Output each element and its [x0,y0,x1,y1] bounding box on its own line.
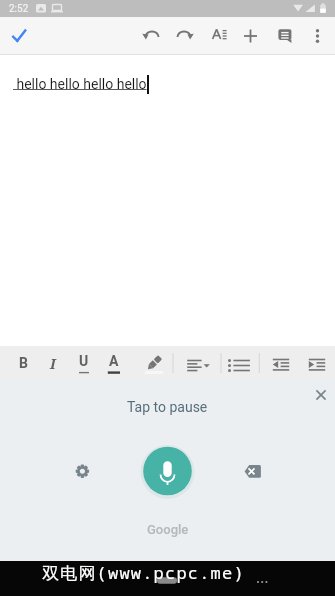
staticText: U [79,353,89,369]
button[interactable] [138,346,170,380]
button[interactable] [266,346,296,380]
staticText: hello hello hello hello [13,76,147,92]
button[interactable] [203,17,236,54]
button[interactable] [302,346,332,380]
button[interactable] [3,17,36,54]
button[interactable]: I [37,346,69,380]
staticText: I [50,354,56,373]
staticText: Tap to pause [127,399,208,415]
button[interactable] [170,17,203,54]
button[interactable] [62,451,102,491]
button[interactable] [226,346,254,380]
button[interactable] [233,451,273,491]
button[interactable] [307,381,335,409]
staticText: 2:52 [9,3,29,15]
button[interactable] [137,17,170,54]
staticText: A [109,353,119,369]
staticText: B [19,355,28,371]
button[interactable] [302,17,335,54]
button[interactable] [139,443,195,499]
staticText: Google [147,522,189,537]
button[interactable] [236,17,269,54]
staticText: 双电网(www.pcpc.me) [42,561,245,584]
button[interactable]: U [68,346,100,380]
button[interactable] [180,346,214,380]
button[interactable]: B [7,346,39,380]
button[interactable]: A [97,346,130,380]
button[interactable] [269,17,302,54]
